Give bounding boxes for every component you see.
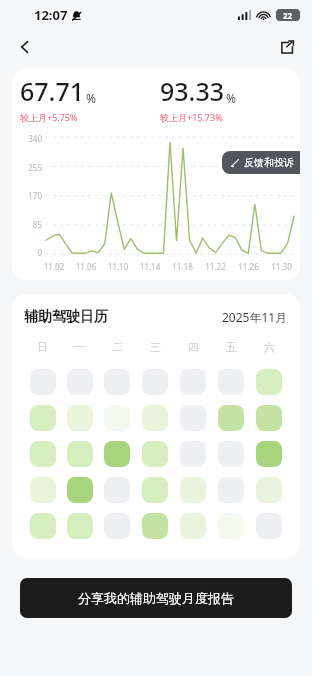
button[interactable]: Day — [180, 369, 206, 395]
staticText: % — [86, 90, 96, 106]
staticText: 二 — [112, 340, 123, 354]
button[interactable]: Day — [256, 441, 282, 467]
button[interactable]: Day — [218, 369, 244, 395]
button[interactable]: Day — [218, 477, 244, 503]
staticText: 340 — [18, 133, 42, 144]
button[interactable]: Day — [30, 477, 56, 503]
button[interactable]: Day — [142, 369, 168, 395]
staticText: 11.30 — [265, 261, 298, 272]
staticText: 11.02 — [38, 261, 70, 272]
button[interactable]: Day — [142, 405, 168, 431]
button[interactable]: Day — [104, 405, 130, 431]
staticText: 93.33 — [160, 74, 225, 108]
staticText: 85 — [18, 219, 42, 230]
staticText: % — [226, 90, 236, 106]
staticText: 2025年11月 — [222, 309, 288, 325]
button[interactable]: Day — [67, 405, 93, 431]
button[interactable]: Day — [30, 369, 56, 395]
staticText: 较上月+5.75% — [20, 111, 78, 123]
button[interactable]: Day — [180, 513, 206, 539]
staticText: 一 — [74, 340, 85, 354]
button[interactable]: Day — [104, 369, 130, 395]
button[interactable]: Day — [104, 477, 130, 503]
staticText: 255 — [18, 162, 42, 173]
button[interactable]: Day — [67, 369, 93, 395]
button[interactable]: Day — [256, 369, 282, 395]
staticText: 11.22 — [199, 261, 232, 272]
button[interactable]: Day — [218, 405, 244, 431]
button[interactable]: 分享我的辅助驾驶月度报告 — [20, 578, 292, 618]
staticText: 12:07 — [34, 6, 68, 24]
staticText: 11.26 — [232, 261, 265, 272]
staticText: 三 — [150, 340, 161, 354]
button[interactable]: Day — [180, 405, 206, 431]
staticText: 67.71 — [20, 74, 85, 108]
button[interactable]: Day — [142, 477, 168, 503]
button[interactable]: 反馈和投诉 — [222, 151, 300, 174]
staticText: 辅助驾驶日历 — [24, 308, 108, 326]
button[interactable]: Back — [8, 30, 42, 64]
button[interactable]: Day — [256, 477, 282, 503]
button[interactable]: Day — [180, 477, 206, 503]
staticText: 四 — [188, 340, 199, 354]
staticText: 0 — [18, 247, 42, 258]
button[interactable]: Day — [67, 513, 93, 539]
button[interactable]: Day — [142, 441, 168, 467]
button[interactable]: Day — [67, 477, 93, 503]
staticText: 11.06 — [70, 261, 102, 272]
staticText: 较上月+15.73% — [160, 111, 223, 123]
button[interactable]: Day — [218, 513, 244, 539]
staticText: 11.14 — [134, 261, 166, 272]
button[interactable]: Day — [104, 441, 130, 467]
button[interactable]: Day — [30, 405, 56, 431]
staticText: 11.18 — [166, 261, 199, 272]
button[interactable]: Day — [104, 513, 130, 539]
staticText: 分享我的辅助驾驶月度报告 — [78, 590, 234, 606]
staticText: 六 — [264, 340, 275, 354]
staticText: 170 — [18, 190, 42, 201]
button[interactable]: Day — [256, 405, 282, 431]
button[interactable]: Day — [218, 441, 244, 467]
button[interactable]: Day — [30, 441, 56, 467]
button[interactable]: Day — [30, 513, 56, 539]
button[interactable]: Day — [180, 441, 206, 467]
staticText: 五 — [226, 340, 237, 354]
button[interactable]: Share — [270, 30, 304, 64]
staticText: 22 — [283, 10, 293, 21]
button[interactable]: Day — [256, 513, 282, 539]
staticText: 11.10 — [102, 261, 134, 272]
button[interactable]: Day — [67, 441, 93, 467]
staticText: 日 — [37, 340, 48, 354]
staticText: 反馈和投诉 — [244, 156, 294, 169]
button[interactable]: Day — [142, 513, 168, 539]
